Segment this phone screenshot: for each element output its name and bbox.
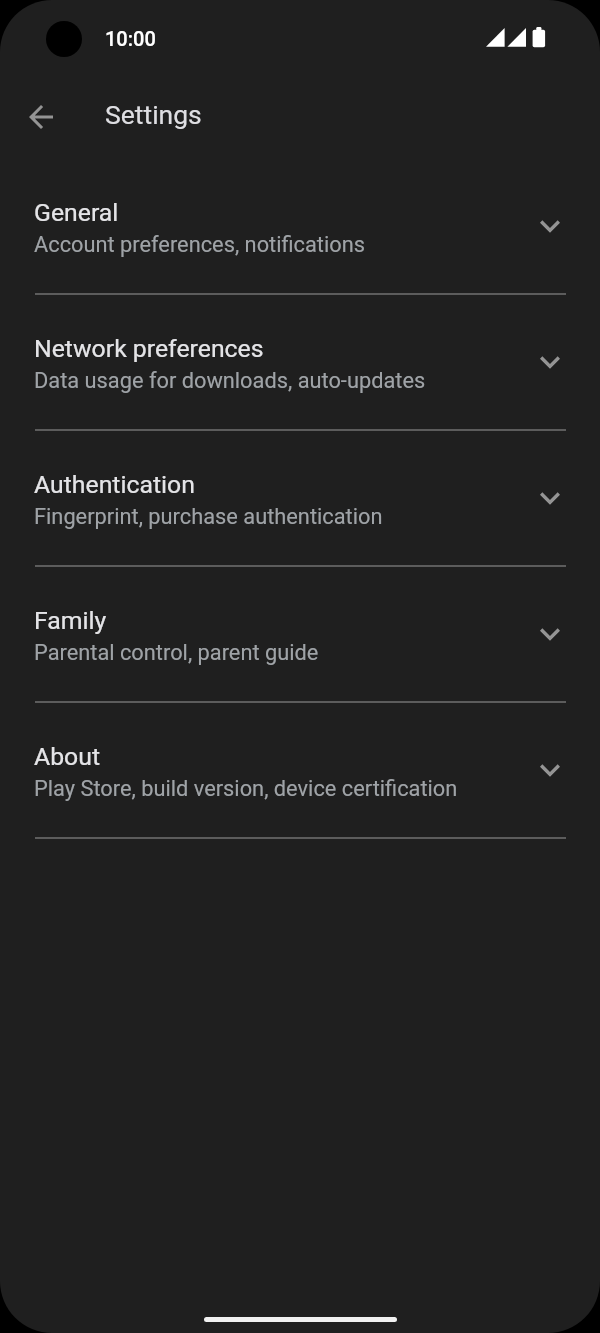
staticText: Account preferences, notifications <box>34 232 366 258</box>
staticText: 10:00 <box>105 27 156 50</box>
staticText: Play Store, build version, device certif… <box>34 776 458 802</box>
staticText: Settings <box>105 99 202 130</box>
staticText: Data usage for downloads, auto-updates <box>34 368 426 394</box>
button[interactable]: Network preferences <box>0 294 600 430</box>
staticText: General <box>34 198 119 227</box>
button[interactable]: About <box>0 702 600 838</box>
staticText: Authentication <box>34 470 195 499</box>
staticText: Parental control, parent guide <box>34 640 319 666</box>
staticText: About <box>34 742 101 771</box>
staticText: Family <box>34 606 107 635</box>
button[interactable]: Authentication <box>0 430 600 566</box>
staticText: Fingerprint, purchase authentication <box>34 504 383 530</box>
button[interactable]: Family <box>0 566 600 702</box>
button[interactable]: General <box>0 158 600 294</box>
button[interactable]: Back <box>17 93 65 141</box>
staticText: Network preferences <box>34 334 264 363</box>
